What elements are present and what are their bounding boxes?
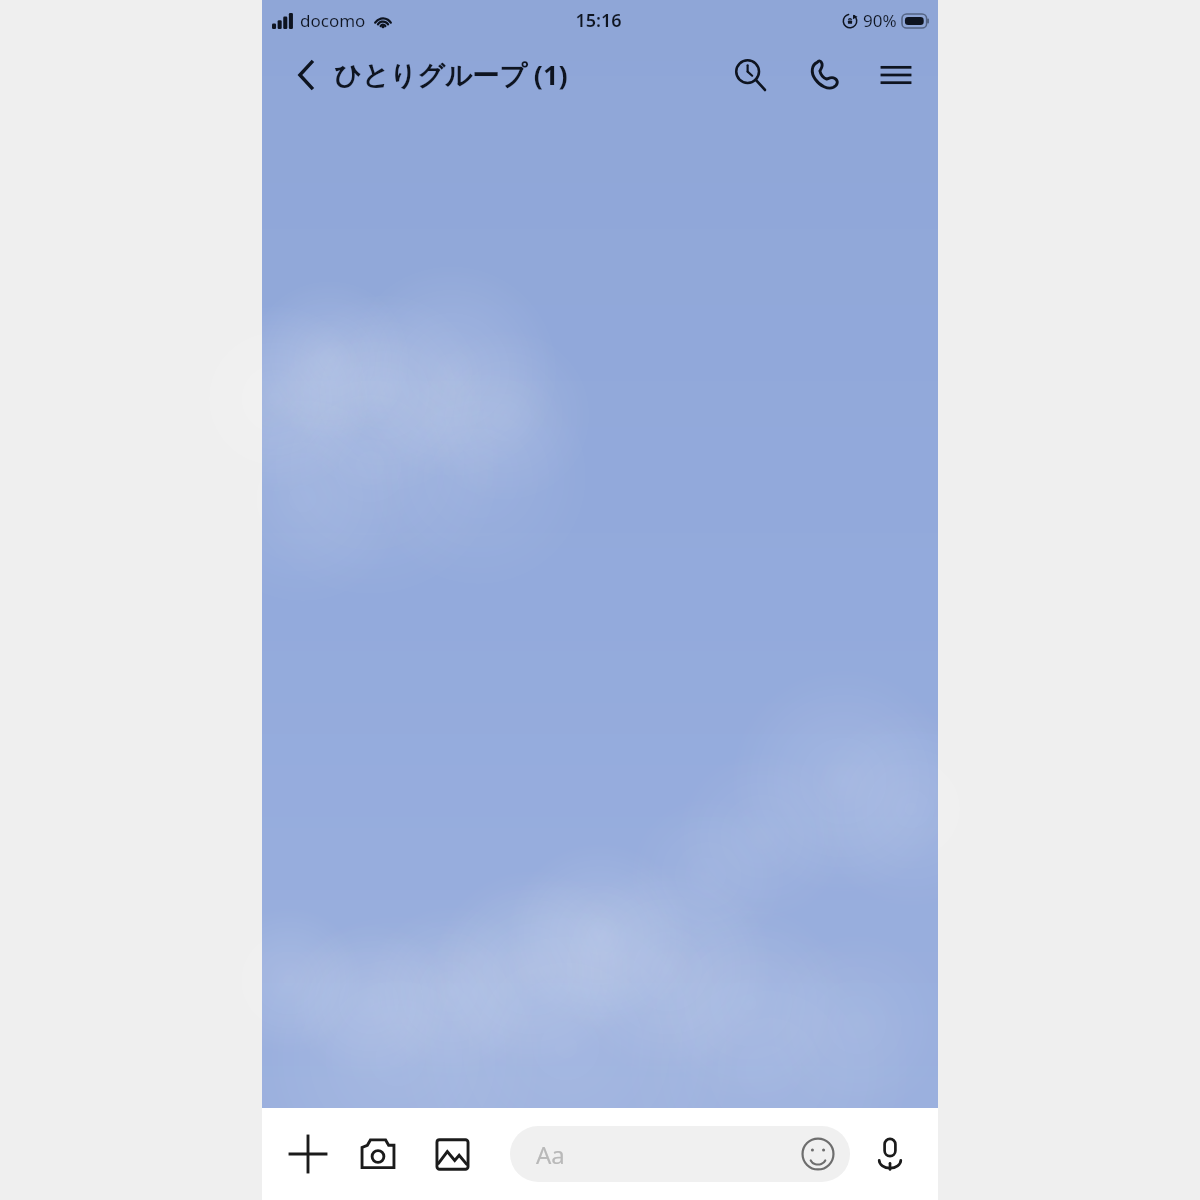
staticText: Aa <box>536 1138 565 1171</box>
button[interactable]: Aa <box>510 1126 850 1182</box>
staticText: docomo <box>300 9 366 32</box>
staticText: 15:16 <box>575 8 622 33</box>
button[interactable]: Camera <box>350 1108 406 1200</box>
button[interactable]: Back <box>282 51 330 99</box>
button[interactable]: Photos <box>424 1108 480 1200</box>
button[interactable]: Search <box>722 47 778 103</box>
staticText: 90% <box>863 9 897 32</box>
button[interactable]: Voice message <box>862 1108 918 1200</box>
button[interactable]: Emoji <box>798 1134 838 1174</box>
button[interactable]: Add <box>280 1108 336 1200</box>
staticText: ひとりグループ (1) <box>334 56 568 93</box>
button[interactable]: Call <box>796 47 852 103</box>
button[interactable]: Menu <box>868 47 924 103</box>
